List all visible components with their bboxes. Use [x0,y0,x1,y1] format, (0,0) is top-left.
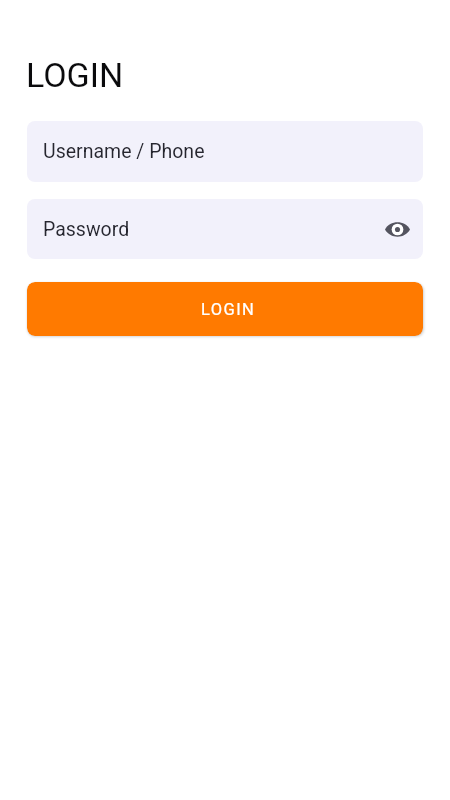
staticText: LOGIN [26,55,124,95]
staticText: Password [43,218,130,241]
button[interactable]: Show password [384,216,410,242]
button[interactable]: Password [27,199,423,259]
button[interactable]: LOGIN [27,282,423,336]
staticText: LOGIN [201,300,256,319]
button[interactable]: Username / Phone [27,121,423,182]
staticText: Username / Phone [43,140,205,163]
